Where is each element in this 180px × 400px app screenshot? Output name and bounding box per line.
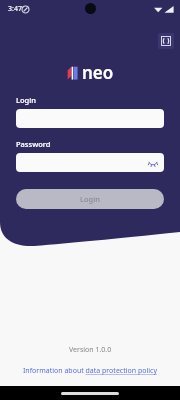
staticText: Version 1.0.0	[69, 345, 112, 355]
staticText: Login	[16, 95, 36, 105]
staticText: Password	[16, 139, 51, 149]
staticText: neo	[82, 61, 114, 84]
button[interactable]: Show password	[147, 157, 159, 169]
staticText: Login	[80, 194, 100, 204]
button[interactable]: Developer options	[158, 33, 174, 49]
button[interactable]	[16, 109, 164, 128]
button[interactable]: Information about data protection policy	[17, 364, 163, 378]
staticText: 3:47	[8, 4, 22, 14]
button[interactable]: Login	[16, 189, 164, 209]
button[interactable]: Show password	[16, 153, 164, 172]
staticText: Information about data protection policy	[23, 366, 157, 376]
